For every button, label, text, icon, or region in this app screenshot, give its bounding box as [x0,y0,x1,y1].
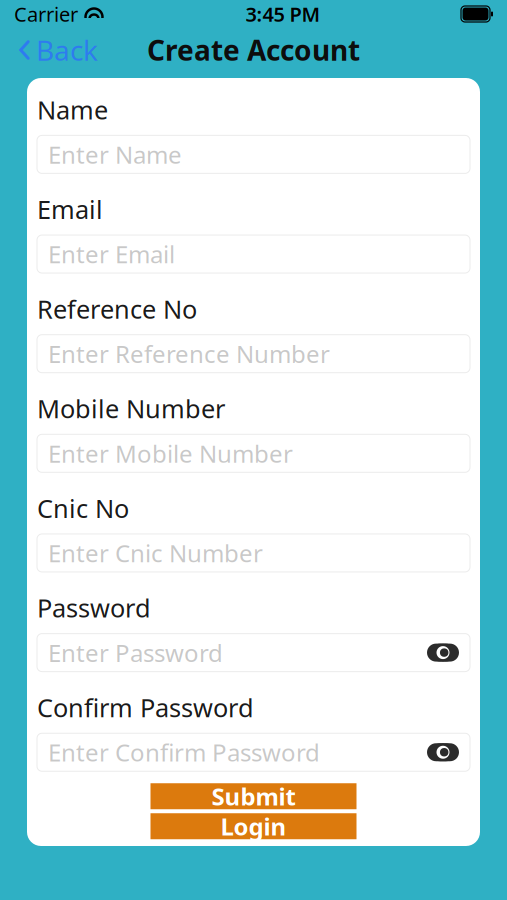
staticText: Cnic No [37,491,129,525]
staticText: Create Account [147,31,360,69]
staticText: Back [36,31,98,69]
button[interactable]: Enter Reference Number [37,335,470,373]
button[interactable]: Back [0,25,98,75]
staticText: Enter Reference Number [48,338,330,370]
staticText: 3:45 PM [245,1,320,27]
staticText: Name [37,93,108,126]
button[interactable]: Enter Mobile Number [37,434,470,472]
button[interactable]: Submit [150,783,356,809]
button[interactable]: Enter Name [37,135,470,173]
staticText: Carrier [14,1,78,27]
staticText: Enter Confirm Password [48,736,320,768]
staticText: Enter Password [48,637,223,669]
staticText: Password [37,591,151,625]
button[interactable]: Enter Confirm Password [37,733,470,771]
staticText: Enter Email [48,238,175,270]
staticText: Login [220,810,286,842]
staticText: Submit [211,780,295,812]
staticText: Enter Mobile Number [48,437,293,469]
button[interactable]: Enter Cnic Number [37,534,470,572]
staticText: Confirm Password [37,691,254,724]
button[interactable]: Login [150,813,356,839]
staticText: Mobile Number [37,392,225,425]
button[interactable]: Enter Password [37,634,470,672]
staticText: Reference No [37,292,197,326]
staticText: Email [37,192,103,226]
staticText: Enter Name [48,138,182,170]
staticText: Enter Cnic Number [48,537,263,569]
button[interactable]: Enter Email [37,235,470,273]
